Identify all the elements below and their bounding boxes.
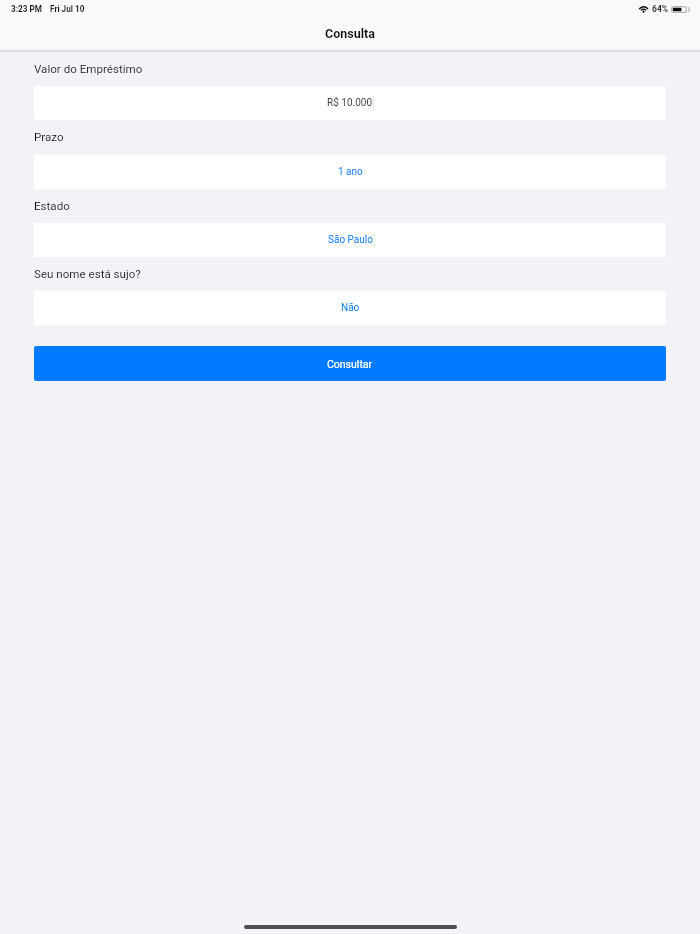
staticText: Consulta: [325, 26, 375, 41]
staticText: Seu nome está sujo?: [34, 267, 141, 281]
button[interactable]: R$ 10.000: [34, 86, 666, 120]
staticText: Prazo: [34, 130, 64, 144]
other: Wi-Fi: [638, 5, 649, 13]
staticText: São Paulo: [328, 234, 373, 246]
staticText: 1 ano: [338, 166, 363, 178]
staticText: Consultar: [327, 358, 373, 370]
staticText: Valor do Empréstimo: [34, 62, 143, 76]
staticText: Fri Jul 10: [50, 4, 85, 14]
other: Battery 64 percent: [671, 6, 690, 13]
button[interactable]: São Paulo: [34, 223, 666, 257]
staticText: 3:23 PM: [11, 4, 42, 14]
staticText: R$ 10.000: [327, 97, 372, 109]
staticText: Não: [341, 302, 360, 314]
staticText: Estado: [34, 199, 70, 213]
button[interactable]: Não: [34, 291, 666, 325]
button[interactable]: Consultar: [34, 346, 666, 381]
button[interactable]: 1 ano: [34, 155, 666, 189]
staticText: 64%: [652, 4, 669, 14]
